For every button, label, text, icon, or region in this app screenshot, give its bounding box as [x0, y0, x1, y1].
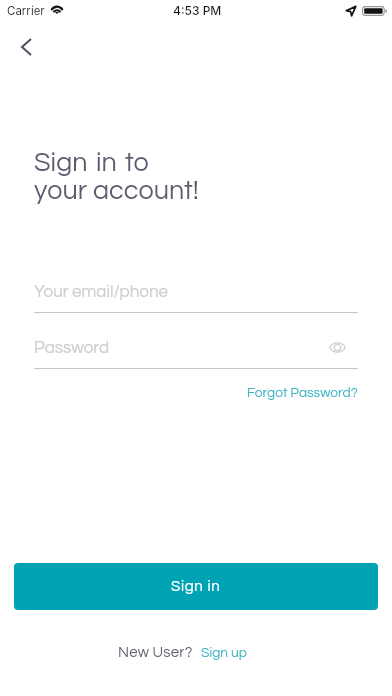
staticText: Forgot Password?	[247, 386, 358, 400]
staticText: Sign	[34, 149, 88, 177]
staticText: Sign up	[201, 646, 247, 660]
button[interactable]: Sign up	[201, 646, 247, 660]
staticText: Password	[34, 339, 110, 357]
staticText: 4:53 PM	[173, 3, 222, 18]
button[interactable]: Password	[34, 334, 358, 362]
staticText: Sign in	[171, 579, 221, 594]
button[interactable]: Forgot Password?	[247, 384, 358, 402]
staticText: New User?	[118, 645, 193, 660]
staticText: your	[34, 177, 87, 205]
button[interactable]: Sign in	[14, 563, 378, 610]
button[interactable]: Back	[6, 27, 46, 67]
staticText: account!	[93, 177, 199, 205]
staticText: to	[125, 149, 149, 177]
button[interactable]: Your email/phone	[34, 278, 358, 306]
button[interactable]: Show password	[323, 333, 352, 362]
staticText: Carrier	[7, 4, 45, 18]
staticText: in	[96, 149, 117, 177]
staticText: Your email/phone	[34, 283, 168, 301]
